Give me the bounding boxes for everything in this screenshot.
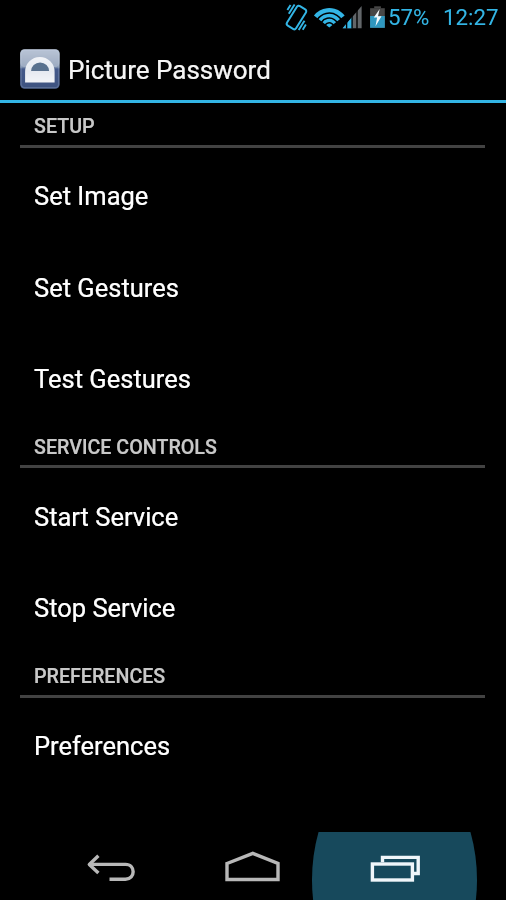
staticText: Test Gestures [34, 364, 191, 394]
staticText: Set Gestures [34, 273, 179, 303]
staticText: Start Service [34, 502, 179, 532]
staticText: SETUP [34, 115, 95, 138]
staticText: Stop Service [34, 593, 176, 623]
button[interactable]: Picture Password [0, 36, 506, 100]
button[interactable]: Preferences [0, 700, 506, 791]
staticText: 12:27 [443, 4, 499, 30]
button[interactable]: Test Gestures [0, 333, 506, 424]
button[interactable]: Set Image [0, 150, 506, 241]
button[interactable]: Set Gestures [0, 242, 506, 333]
button[interactable]: Recent apps [355, 834, 425, 890]
staticText: SERVICE CONTROLS [34, 436, 217, 459]
button[interactable]: Stop Service [0, 562, 506, 653]
button[interactable]: Home [218, 834, 284, 890]
staticText: Set Image [34, 181, 149, 211]
staticText: Picture Password [68, 55, 271, 85]
button[interactable]: Start Service [0, 471, 506, 562]
staticText: 57% [388, 4, 430, 30]
staticText: PREFERENCES [34, 665, 166, 688]
button[interactable]: Back [77, 834, 137, 890]
staticText: Preferences [34, 731, 171, 761]
